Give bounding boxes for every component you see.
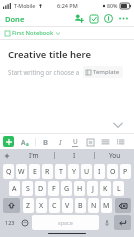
button[interactable]: K — [100, 181, 111, 196]
button[interactable]: More options — [116, 11, 131, 26]
button[interactable]: O — [107, 164, 118, 179]
button[interactable]: Note info — [101, 11, 116, 26]
staticText: Creative title here — [8, 48, 92, 61]
button[interactable]: C — [49, 198, 60, 213]
button[interactable]: I — [94, 164, 105, 179]
button[interactable]: D — [35, 181, 46, 196]
button[interactable]: Share note — [71, 11, 86, 26]
staticText: N — [91, 201, 97, 211]
staticText: Template — [93, 68, 120, 76]
button[interactable]: H — [74, 181, 85, 196]
staticText: 80% — [107, 2, 118, 9]
button[interactable]: I — [55, 137, 65, 147]
button[interactable]: Bulleted list — [115, 137, 125, 147]
button[interactable]: Template — [83, 66, 123, 78]
staticText: L — [117, 184, 121, 194]
staticText: F — [52, 184, 56, 194]
button[interactable]: L — [113, 181, 124, 196]
staticText: J — [92, 184, 94, 194]
button[interactable]: Shift — [3, 198, 20, 213]
staticText: You — [109, 151, 121, 160]
staticText: a — [26, 141, 29, 147]
button[interactable]: Highlight — [85, 137, 95, 147]
button[interactable]: Add — [3, 136, 14, 147]
button[interactable]: First Notebook — [0, 27, 134, 39]
button[interactable]: Dictate — [100, 215, 113, 230]
button[interactable]: Z — [23, 198, 34, 213]
staticText: I — [73, 151, 76, 160]
button[interactable]: U — [81, 164, 92, 179]
button[interactable]: Reminder — [86, 11, 101, 26]
staticText: Q — [6, 167, 12, 177]
staticText: I — [59, 137, 62, 147]
button[interactable]: S — [22, 181, 33, 196]
button[interactable]: Emoji — [18, 215, 31, 230]
button[interactable]: T — [55, 164, 66, 179]
staticText: S — [26, 184, 30, 194]
staticText: O — [110, 167, 116, 177]
button[interactable]: You — [95, 149, 134, 162]
staticText: Z — [26, 201, 31, 211]
button[interactable]: I — [55, 149, 94, 162]
staticText: V — [65, 201, 70, 211]
staticText: B — [43, 137, 48, 147]
staticText: B — [78, 201, 83, 211]
button[interactable]: J — [87, 181, 98, 196]
staticText: U — [73, 137, 78, 146]
button[interactable]: Align left — [100, 137, 110, 147]
staticText: Done — [5, 14, 25, 24]
staticText: I'm — [29, 151, 39, 160]
button[interactable]: Text style — [19, 136, 31, 148]
button[interactable]: G — [61, 181, 72, 196]
staticText: T-Mobile — [14, 2, 36, 9]
button[interactable]: 123 — [2, 215, 18, 230]
staticText: U — [84, 167, 90, 177]
button[interactable]: Expand — [0, 149, 14, 162]
button[interactable]: P — [120, 164, 131, 179]
staticText: 6:24 PM — [57, 2, 78, 9]
button[interactable]: N — [88, 198, 99, 213]
button[interactable]: R — [42, 164, 53, 179]
staticText: I — [98, 167, 101, 177]
staticText: Y — [72, 167, 76, 177]
button[interactable]: M — [101, 198, 112, 213]
staticText: W — [18, 167, 25, 177]
button[interactable]: Done — [0, 12, 30, 26]
staticText: space — [58, 219, 73, 226]
button[interactable]: E — [29, 164, 40, 179]
button[interactable]: Y — [68, 164, 79, 179]
staticText: 123 — [5, 219, 15, 226]
staticText: T — [59, 167, 63, 177]
staticText: M — [103, 201, 110, 211]
button[interactable]: Underline — [70, 137, 80, 147]
button[interactable]: X — [36, 198, 47, 213]
button[interactable]: V — [62, 198, 73, 213]
button[interactable]: A — [9, 181, 20, 196]
button[interactable]: Backspace — [115, 198, 131, 213]
button[interactable]: Return — [114, 215, 131, 230]
staticText: R — [45, 167, 50, 177]
staticText: A — [21, 138, 26, 147]
button[interactable]: I'm — [14, 149, 54, 162]
button[interactable]: Q — [3, 164, 14, 179]
staticText: D — [38, 184, 44, 194]
staticText: K — [103, 184, 108, 194]
button[interactable]: B — [75, 198, 86, 213]
staticText: C — [52, 201, 57, 211]
staticText: X — [39, 201, 44, 211]
button[interactable]: space — [32, 215, 99, 230]
staticText: G — [64, 184, 70, 194]
staticText: First Notebook — [12, 29, 54, 37]
staticText: Start writing or choose a — [8, 68, 80, 76]
staticText: E — [33, 167, 37, 177]
button[interactable]: B — [40, 137, 50, 147]
staticText: A — [12, 184, 17, 194]
button[interactable]: W — [16, 164, 27, 179]
staticText: P — [123, 167, 128, 177]
staticText: H — [77, 184, 83, 194]
button[interactable]: F — [48, 181, 59, 196]
